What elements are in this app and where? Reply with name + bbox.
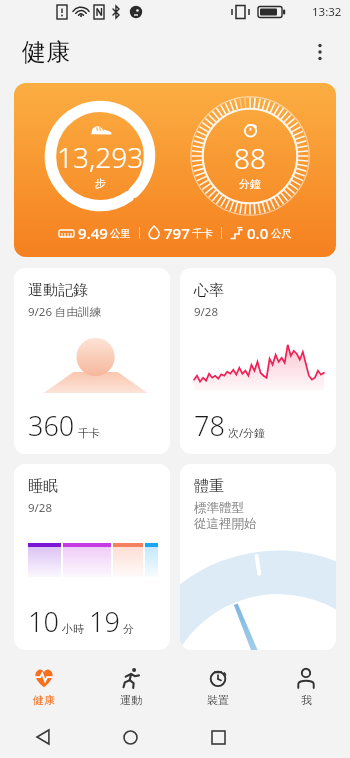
staticText: 從這裡開始 xyxy=(194,516,257,532)
button[interactable]: 體重 xyxy=(180,464,336,650)
staticText: 我 xyxy=(301,693,312,707)
button[interactable]: 運動 xyxy=(87,658,174,716)
staticText: 10 xyxy=(28,603,59,640)
button[interactable]: Home xyxy=(87,716,174,758)
staticText: 9/28 xyxy=(28,500,53,516)
staticText: 360 xyxy=(28,407,75,444)
staticText: 797 xyxy=(164,223,190,243)
staticText: 78 xyxy=(194,407,225,444)
staticText: 健康 xyxy=(33,693,55,707)
staticText: 運動記錄 xyxy=(28,281,88,300)
staticText: 分 xyxy=(123,622,134,636)
staticText: 體重 xyxy=(194,477,224,496)
staticText: 步 xyxy=(95,176,106,190)
button[interactable]: Back xyxy=(0,716,87,758)
button[interactable]: 我 xyxy=(262,658,350,716)
button[interactable]: 健康 xyxy=(0,658,87,716)
button[interactable]: More options xyxy=(300,32,340,72)
staticText: 睡眠 xyxy=(28,477,58,496)
staticText: 裝置 xyxy=(207,693,229,707)
staticText: 分鐘 xyxy=(239,177,261,191)
staticText: 9/26 自由訓練 xyxy=(28,304,102,320)
staticText: 公尺 xyxy=(271,227,292,240)
staticText: 13:32 xyxy=(312,4,342,20)
staticText: 0.0 xyxy=(247,223,269,243)
button[interactable]: 裝置 xyxy=(174,658,262,716)
button[interactable]: 13,293 xyxy=(14,83,336,257)
staticText: 公里 xyxy=(110,227,131,240)
staticText: 千卡 xyxy=(192,227,213,240)
staticText: 心率 xyxy=(194,281,224,300)
staticText: 健康 xyxy=(22,37,70,67)
staticText: 19 xyxy=(89,603,120,640)
staticText: 千卡 xyxy=(78,426,100,440)
staticText: 88 xyxy=(234,139,266,177)
staticText: 小時 xyxy=(62,622,84,636)
staticText: 13,293 xyxy=(57,138,144,176)
button[interactable]: 心率 xyxy=(180,268,336,454)
staticText: 標準體型 xyxy=(194,500,244,516)
staticText: 次/分鐘 xyxy=(228,425,266,440)
button[interactable]: 運動記錄 xyxy=(14,268,170,454)
staticText: 運動 xyxy=(120,693,142,707)
staticText: 9.49 xyxy=(78,223,108,243)
button[interactable]: Recent apps xyxy=(174,716,262,758)
button[interactable]: 睡眠 xyxy=(14,464,170,650)
staticText: 9/28 xyxy=(194,304,219,320)
